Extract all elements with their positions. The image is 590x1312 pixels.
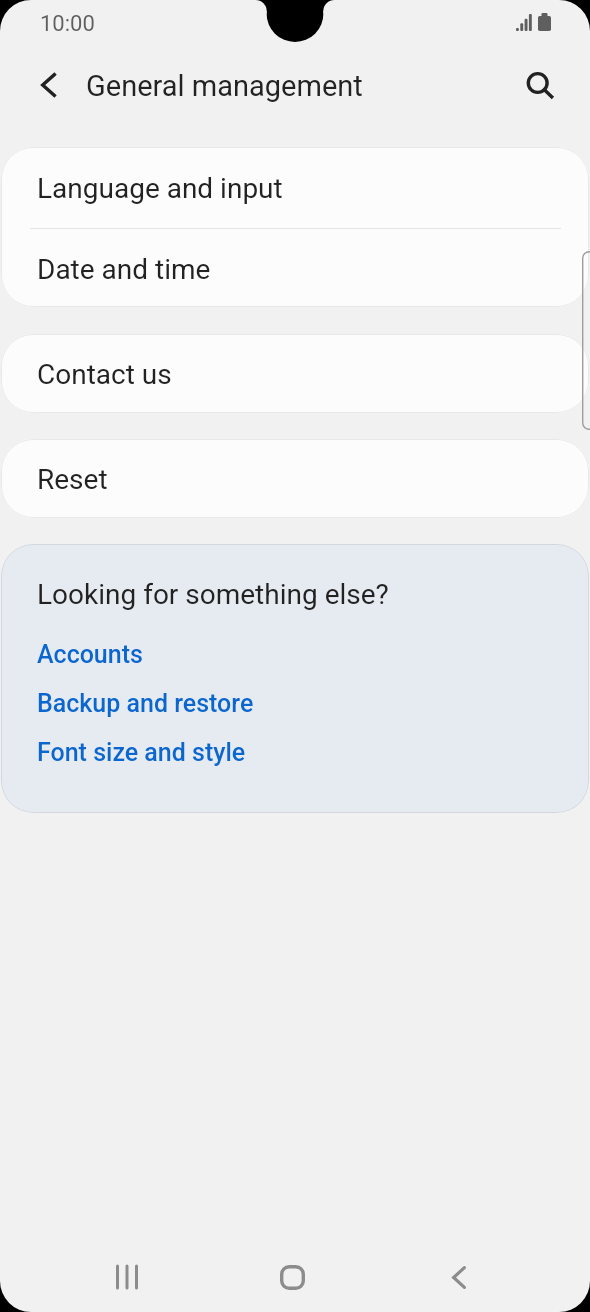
staticText: Contact us [37, 358, 172, 391]
staticText: Backup and restore [37, 689, 254, 718]
button[interactable]: Reset [1, 439, 589, 518]
button[interactable]: Recent apps [88, 1238, 166, 1312]
button[interactable]: Back [420, 1238, 498, 1312]
button[interactable]: Language and input [1, 147, 589, 228]
staticText: Looking for something else? [37, 578, 389, 611]
staticText: Language and input [37, 172, 283, 205]
staticText: General management [86, 69, 363, 103]
staticText: Reset [37, 463, 108, 496]
button[interactable]: Backup and restore [37, 689, 254, 718]
button[interactable]: Contact us [1, 334, 589, 413]
button[interactable]: Navigate up [24, 61, 72, 109]
button[interactable]: Date and time [1, 229, 589, 307]
staticText: Date and time [37, 253, 211, 286]
button[interactable]: Home [253, 1238, 331, 1312]
button[interactable]: Font size and style [37, 738, 246, 767]
button[interactable]: Accounts [37, 640, 143, 669]
staticText: 10:00 [40, 11, 95, 37]
button[interactable]: Search [517, 62, 567, 112]
staticText: Accounts [37, 640, 143, 669]
staticText: Font size and style [37, 738, 246, 767]
